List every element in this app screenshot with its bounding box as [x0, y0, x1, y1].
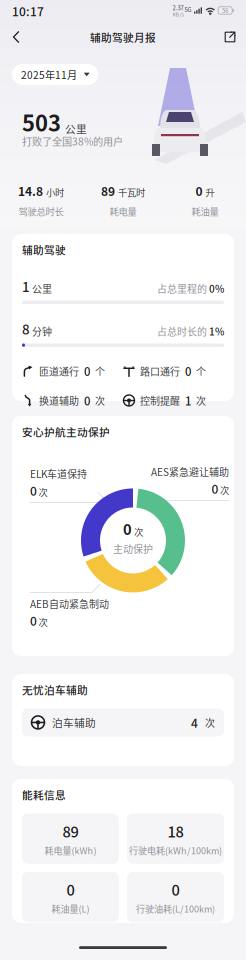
staticText: 公里 [32, 281, 52, 296]
staticText: 0 [84, 392, 90, 409]
staticText: 4 [191, 714, 198, 731]
staticText: 能耗信息 [22, 787, 66, 802]
staticText: 2.37 [172, 3, 183, 12]
staticText: 0 [84, 363, 90, 379]
staticText: 0 [30, 482, 37, 499]
staticText: 行驶电耗(kWh/100km) [129, 844, 222, 857]
staticText: 次 [205, 715, 215, 730]
staticText: KB/s [172, 10, 183, 18]
staticText: 次 [38, 615, 47, 629]
staticText: 0 [30, 612, 37, 629]
staticText: 升 [205, 185, 214, 199]
staticText: 次 [220, 483, 229, 497]
staticText: 耗电量 [109, 204, 136, 218]
staticText: 次 [95, 393, 105, 408]
staticText: 安心护航主动保护 [22, 424, 110, 439]
staticText: 换道辅助 [39, 393, 79, 408]
staticText: 5G [184, 5, 191, 14]
button[interactable]: 2025年11月 [12, 64, 98, 85]
staticText: 0 [185, 363, 191, 379]
staticText: AEB自动紧急制动 [30, 596, 109, 611]
staticText: 次 [38, 485, 47, 499]
staticText: 分钟 [32, 324, 52, 338]
staticText: 匝道通行 [39, 364, 79, 378]
staticText: 驾驶总时长 [18, 204, 63, 218]
staticText: 89 [101, 182, 115, 199]
staticText: 辅助驾驶月报 [90, 29, 156, 45]
staticText: 次 [196, 393, 206, 408]
staticText: 14.8 [18, 182, 43, 199]
staticText: 2025年11月 [21, 67, 77, 82]
staticText: 占总里程的 [157, 281, 207, 296]
staticText: 耗油量 [191, 204, 218, 218]
staticText: 0 [195, 182, 202, 199]
staticText: 18 [167, 820, 183, 842]
staticText: 89 [62, 820, 78, 842]
staticText: 占总时长的 [157, 324, 207, 338]
staticText: 耗电量(kWh) [44, 844, 96, 857]
staticText: 0 [211, 480, 218, 497]
staticText: 千瓦时 [118, 185, 145, 199]
staticText: 打败了全国38%的用户 [22, 134, 123, 149]
staticText: 8 [22, 319, 30, 338]
staticText: 次 [134, 525, 143, 538]
staticText: 个 [196, 364, 206, 378]
staticText: 路口通行 [140, 364, 180, 378]
staticText: 主动保护 [113, 541, 153, 556]
staticText: 小时 [46, 185, 64, 199]
staticText: 0 [66, 879, 74, 900]
staticText: 503 [22, 106, 61, 138]
staticText: 1 [22, 276, 30, 296]
staticText: 0 [171, 879, 179, 900]
staticText: 控制提醒 [140, 393, 180, 408]
staticText: 56 [222, 6, 228, 14]
staticText: 泊车辅助 [52, 715, 96, 730]
button[interactable]: 返回 [0, 22, 32, 52]
staticText: 10:17 [12, 2, 44, 20]
staticText: 1% [209, 324, 224, 338]
staticText: 1 [185, 392, 191, 409]
staticText: 公里 [65, 121, 87, 136]
staticText: 0% [209, 281, 224, 296]
button[interactable]: 分享 [214, 22, 246, 52]
staticText: 辅助驾驶 [22, 242, 66, 257]
staticText: 行驶油耗(L/100km) [136, 902, 215, 915]
staticText: AES紧急避让辅助 [151, 464, 229, 479]
staticText: ELK车道保持 [30, 466, 87, 481]
staticText: 无忧泊车辅助 [22, 682, 88, 697]
staticText: 个 [95, 364, 105, 378]
staticText: 耗油量(L) [51, 902, 89, 915]
staticText: 0 [123, 518, 132, 539]
